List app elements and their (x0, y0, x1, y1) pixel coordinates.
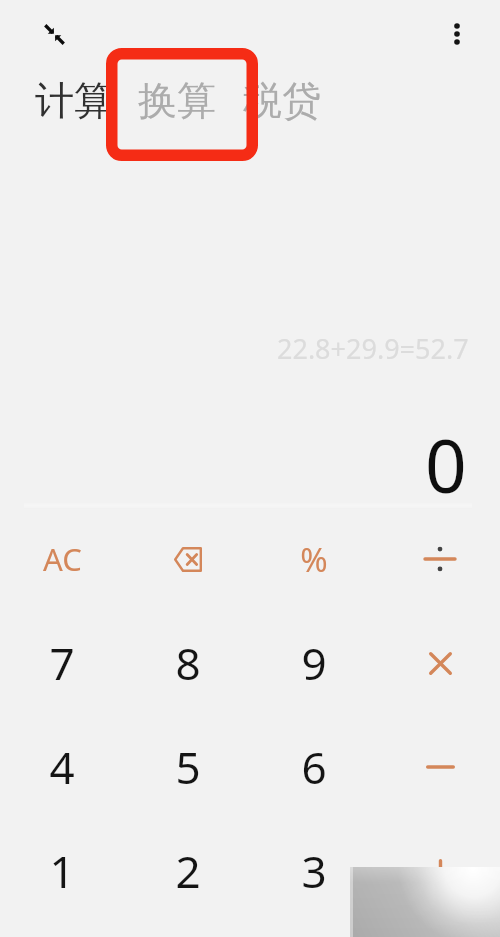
button[interactable]: Collapse (34, 14, 74, 54)
button[interactable]: 7 (2, 613, 122, 713)
staticText: 2 (175, 841, 201, 901)
button[interactable]: 4 (2, 717, 122, 817)
button[interactable]: 6 (254, 717, 374, 817)
staticText: 计算 (35, 76, 113, 125)
button[interactable]: % (254, 509, 374, 609)
staticText: 7 (49, 633, 75, 693)
staticText: 9 (301, 633, 327, 693)
staticText: 1 (49, 841, 75, 901)
button[interactable]: 1 (2, 821, 122, 921)
staticText: 8 (175, 633, 201, 693)
staticText: % (300, 537, 328, 582)
staticText: 税贷 (243, 76, 321, 125)
staticText: AC (43, 538, 82, 580)
button[interactable]: Multiply (380, 613, 500, 713)
button[interactable]: More options (437, 14, 477, 54)
button[interactable]: Divide (380, 509, 500, 609)
button[interactable]: 3 (254, 821, 374, 921)
button[interactable]: AC (2, 509, 122, 609)
button[interactable]: 8 (128, 613, 248, 713)
button[interactable]: 税贷 (240, 74, 324, 126)
button[interactable]: 9 (254, 613, 374, 713)
staticText: 0 (425, 415, 467, 511)
button[interactable]: Plus (380, 821, 500, 921)
staticText: 3 (301, 841, 327, 901)
staticText: 6 (301, 737, 327, 797)
button[interactable]: Minus (380, 717, 500, 817)
button[interactable]: 换算 (135, 74, 219, 126)
button[interactable]: 5 (128, 717, 248, 817)
staticText: 5 (175, 737, 201, 797)
staticText: 4 (49, 737, 75, 797)
button[interactable]: Backspace (128, 509, 248, 609)
staticText: 22.8+29.9=52.7 (277, 330, 469, 364)
staticText: 换算 (138, 76, 216, 125)
button[interactable]: 计算 (32, 74, 116, 126)
button[interactable]: 2 (128, 821, 248, 921)
